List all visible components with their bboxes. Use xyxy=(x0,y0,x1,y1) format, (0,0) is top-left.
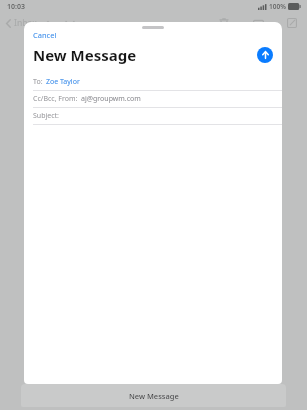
staticText: Inbox xyxy=(14,17,37,29)
staticText: New Message xyxy=(33,45,137,65)
button[interactable]: Cc/Bcc, From: xyxy=(24,91,282,107)
button[interactable]: Next message xyxy=(63,16,77,30)
staticText: aj@groupwm.com xyxy=(81,94,141,104)
button[interactable]: Previous message xyxy=(41,16,55,30)
button[interactable]: Subject: xyxy=(24,108,282,124)
button[interactable]: Send xyxy=(257,47,273,63)
button[interactable]: Inbox xyxy=(0,15,41,31)
staticText: 10:03 xyxy=(7,2,25,12)
button[interactable]: To: xyxy=(24,74,282,90)
staticText: Cc/Bcc, From: xyxy=(33,94,78,104)
staticText: 100% xyxy=(269,2,286,11)
staticText: Subject: xyxy=(33,111,59,121)
staticText: To: xyxy=(33,77,43,87)
staticText: Cancel xyxy=(33,30,57,40)
staticText: Zoe Taylor xyxy=(46,77,80,87)
button[interactable]: New Message xyxy=(21,384,286,407)
button[interactable]: Delete xyxy=(216,15,232,31)
button[interactable]: Cancel xyxy=(24,29,66,41)
button[interactable]: Move to folder xyxy=(250,15,266,31)
button[interactable]: Compose xyxy=(284,15,300,31)
staticText: New Message xyxy=(129,391,179,401)
